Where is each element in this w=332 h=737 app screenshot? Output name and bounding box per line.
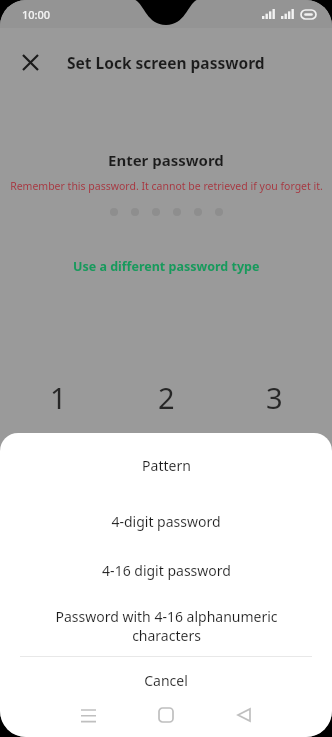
button[interactable]: Password with 4-16 alphanumeric characte… bbox=[0, 595, 332, 656]
button[interactable]: 4-digit password bbox=[0, 497, 332, 546]
staticText: 1 bbox=[50, 378, 67, 417]
staticText: 10:00 bbox=[22, 7, 51, 22]
staticText: Enter password bbox=[108, 150, 224, 170]
button[interactable]: Recents bbox=[66, 693, 110, 737]
button[interactable]: Cancel bbox=[0, 657, 332, 704]
button[interactable]: Close bbox=[10, 42, 50, 82]
button[interactable]: Home bbox=[144, 693, 188, 737]
button[interactable]: 4-16 digit password bbox=[0, 546, 332, 595]
staticText: 3 bbox=[266, 378, 283, 417]
staticText: 2 bbox=[158, 378, 175, 417]
button[interactable]: Pattern bbox=[0, 433, 332, 497]
button[interactable]: Back bbox=[222, 693, 266, 737]
staticText: Remember this password. It cannot be ret… bbox=[10, 179, 323, 193]
staticText: Cancel bbox=[144, 671, 188, 690]
staticText: Password with 4-16 alphanumeric characte… bbox=[55, 607, 278, 645]
staticText: 4-digit password bbox=[111, 512, 221, 531]
staticText: Use a different password type bbox=[73, 258, 260, 275]
staticText: Pattern bbox=[142, 456, 191, 475]
staticText: 4-16 digit password bbox=[102, 561, 231, 580]
button[interactable]: Use a different password type bbox=[65, 254, 268, 279]
staticText: Set Lock screen password bbox=[67, 52, 265, 73]
